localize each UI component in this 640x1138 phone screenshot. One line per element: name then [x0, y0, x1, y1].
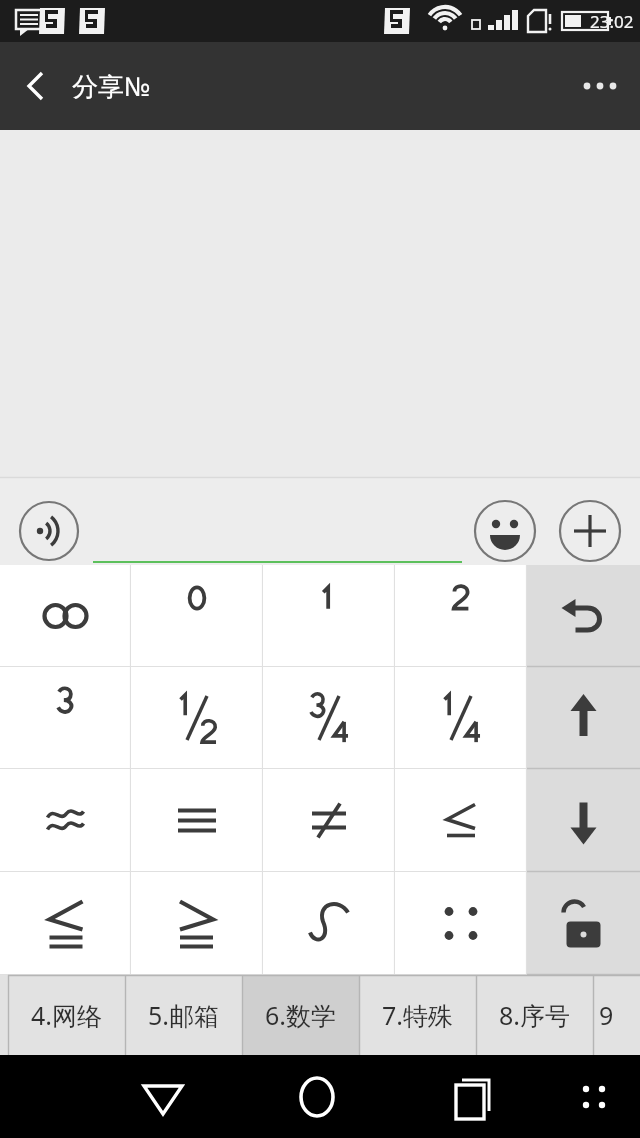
button[interactable]: Emoji	[475, 491, 535, 551]
button[interactable]: 8.序号	[476, 975, 593, 1055]
button[interactable]: 6.数学	[242, 975, 359, 1055]
button[interactable]: Symbol key	[395, 565, 527, 667]
staticText: 23:02	[590, 10, 634, 33]
button[interactable]: Voice input	[20, 492, 78, 550]
button[interactable]: Symbol key	[131, 872, 263, 975]
button[interactable]: Symbol key	[131, 769, 263, 872]
button[interactable]: Add	[560, 491, 620, 551]
button[interactable]: Symbol key	[131, 565, 263, 667]
staticText: 8.序号	[499, 998, 571, 1032]
staticText: 6.数学	[265, 998, 337, 1032]
button[interactable]: More options	[560, 42, 640, 130]
button[interactable]: Home	[240, 1055, 394, 1138]
button[interactable]: 9	[593, 975, 640, 1055]
button[interactable]: Symbol key	[0, 872, 131, 975]
button[interactable]: Symbol key	[0, 667, 131, 769]
button[interactable]: Lock	[527, 872, 640, 975]
button[interactable]: Symbol key	[395, 872, 527, 975]
button[interactable]: Symbol key	[263, 667, 395, 769]
button[interactable]: Symbol key	[395, 667, 527, 769]
button[interactable]: Symbol key	[263, 872, 395, 975]
button[interactable]: Back	[0, 42, 72, 130]
button[interactable]: Symbol key	[131, 667, 263, 769]
button[interactable]: Back	[86, 1055, 240, 1138]
staticText: 5.邮箱	[148, 998, 220, 1032]
button[interactable]: Scroll down	[527, 769, 640, 872]
button[interactable]: Recents	[394, 1055, 548, 1138]
staticText: 9	[599, 998, 614, 1032]
button[interactable]: 5.邮箱	[125, 975, 242, 1055]
button[interactable]: Undo	[527, 565, 640, 667]
button[interactable]: More	[548, 1055, 640, 1138]
button[interactable]: Symbol key	[395, 769, 527, 872]
button[interactable]: Symbol key	[263, 769, 395, 872]
button[interactable]: 7.特殊	[359, 975, 476, 1055]
button[interactable]: Scroll up	[527, 667, 640, 769]
button[interactable]: Symbol key	[263, 565, 395, 667]
button[interactable]: 4.网络	[8, 975, 125, 1055]
staticText: 7.特殊	[382, 998, 454, 1032]
button[interactable]: Symbol key	[0, 565, 131, 667]
staticText: 4.网络	[31, 998, 103, 1032]
staticText: 分享№	[72, 68, 151, 104]
button[interactable]: Symbol key	[0, 769, 131, 872]
